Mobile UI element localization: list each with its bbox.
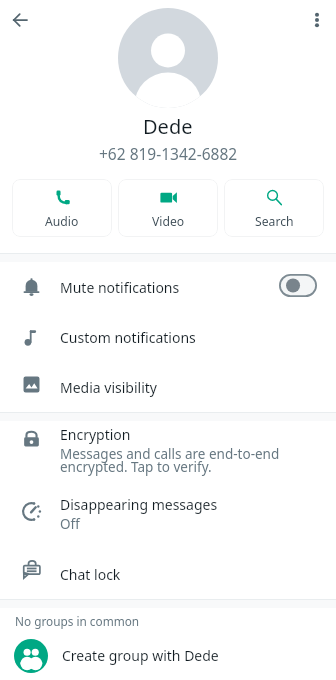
staticText: Custom notifications xyxy=(60,328,196,347)
staticText: Off xyxy=(60,515,80,533)
staticText: Mute notifications xyxy=(60,278,180,297)
button[interactable]: Video xyxy=(118,179,218,237)
staticText: +62 819-1342-6882 xyxy=(99,143,238,164)
staticText: Media visibility xyxy=(60,378,157,397)
staticText: Chat lock xyxy=(60,565,121,584)
button[interactable]: Back xyxy=(1,1,39,39)
button[interactable]: Custom notifications xyxy=(0,312,336,362)
button[interactable]: Mute notifications xyxy=(0,262,336,312)
button[interactable]: More options xyxy=(298,1,336,39)
button[interactable]: Mute notifications toggle xyxy=(279,274,317,297)
staticText: Search xyxy=(255,213,294,230)
button[interactable]: Encryption xyxy=(0,421,336,479)
staticText: Dede xyxy=(143,113,193,140)
staticText: Encryption xyxy=(60,425,131,444)
staticText: Disappearing messages xyxy=(60,495,218,514)
button[interactable]: Audio xyxy=(12,179,112,237)
staticText: Create group with Dede xyxy=(62,646,219,665)
button[interactable]: Disappearing messages xyxy=(0,479,336,549)
staticText: Audio xyxy=(45,213,79,230)
button[interactable]: Chat lock xyxy=(0,549,336,599)
staticText: Video xyxy=(152,213,185,230)
staticText: Messages and calls are end-to-end encryp… xyxy=(60,445,280,476)
button[interactable]: Search xyxy=(224,179,324,237)
staticText: No groups in common xyxy=(15,613,140,629)
button[interactable]: Media visibility xyxy=(0,362,336,412)
button[interactable]: Create group with Dede xyxy=(0,631,336,680)
